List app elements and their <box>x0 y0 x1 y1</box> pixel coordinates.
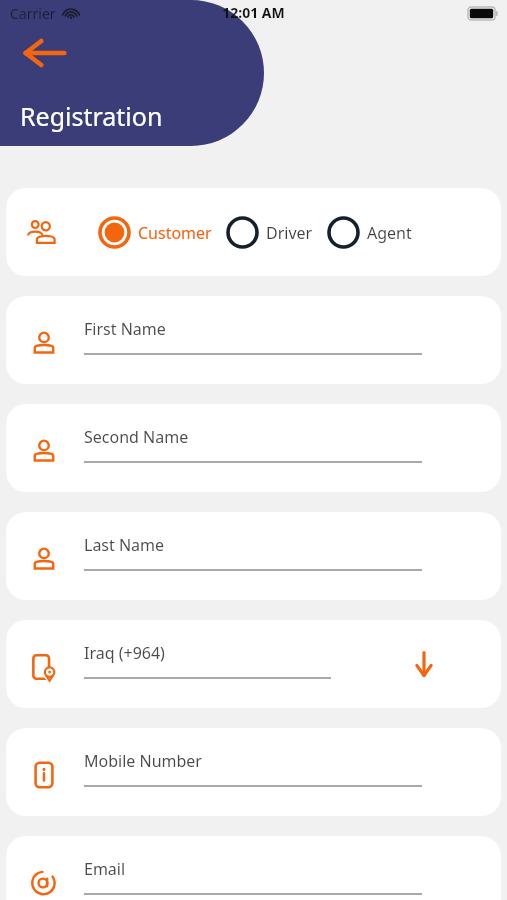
staticText: Second Name <box>84 426 189 448</box>
staticText: Carrier <box>10 4 56 23</box>
staticText: Mobile Number <box>84 750 202 772</box>
button[interactable]: Agent <box>327 216 412 249</box>
staticText: First Name <box>84 318 166 340</box>
button[interactable]: Mobile Number <box>6 728 501 816</box>
staticText: Email <box>84 858 126 880</box>
button[interactable]: Back <box>22 30 68 76</box>
button[interactable]: Customer <box>98 216 212 249</box>
button[interactable]: Iraq (+964) <box>6 620 501 708</box>
staticText: Last Name <box>84 534 165 556</box>
staticText: Driver <box>266 222 313 244</box>
button[interactable]: Select country code <box>406 646 442 682</box>
staticText: 12:01 AM <box>0 3 507 22</box>
staticText: Customer <box>138 222 212 244</box>
staticText: Agent <box>367 222 412 244</box>
button[interactable]: First Name <box>6 296 501 384</box>
button[interactable]: Second Name <box>6 404 501 492</box>
button[interactable]: Driver <box>226 216 313 249</box>
button[interactable]: Last Name <box>6 512 501 600</box>
staticText: Registration <box>20 99 163 133</box>
button[interactable]: Email <box>6 836 501 900</box>
staticText: Iraq (+964) <box>84 642 165 664</box>
